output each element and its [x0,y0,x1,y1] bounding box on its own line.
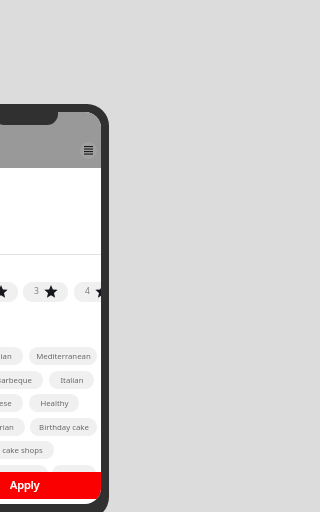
staticText: Vegetarian [0,422,14,433]
button[interactable]: Indian [0,347,23,365]
button[interactable]: Birthday cake [30,418,97,436]
staticText: Italian [60,375,84,386]
button[interactable]: 3 [23,282,68,302]
button[interactable]: 2 [0,282,18,302]
staticText: Birthday cake [39,422,89,433]
staticText: cake shops [2,445,43,456]
button[interactable]: Menu [80,142,97,159]
button[interactable]: 4 [74,282,101,302]
staticText: Beverages [55,469,94,480]
staticText: Mediterranean [36,351,91,362]
button[interactable]: cake shops [0,441,54,459]
button[interactable]: Italian [49,371,94,389]
button[interactable]: Fast Food [0,465,48,483]
staticText: Apply [10,477,40,492]
button[interactable]: Chinese [0,394,23,412]
button[interactable]: Vegetarian [0,418,25,436]
staticText: 3 [34,285,39,297]
staticText: Indian [0,351,12,362]
button[interactable]: Healthy [29,394,79,412]
staticText: Chinese [0,398,12,409]
button[interactable]: Barbeque [0,371,43,389]
button[interactable]: Beverages [52,465,96,483]
staticText: 4 [85,285,90,297]
staticText: Barbeque [0,375,32,386]
staticText: Fast Food [1,469,37,480]
button[interactable]: Mediterranean [29,347,97,365]
button[interactable]: Apply [0,472,101,499]
staticText: Healthy [40,398,69,409]
